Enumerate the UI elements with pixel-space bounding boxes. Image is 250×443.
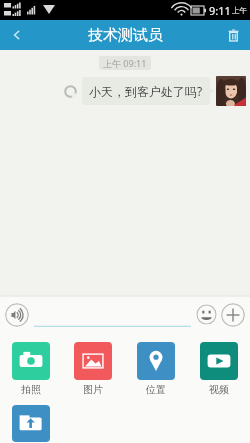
button[interactable]: Delete conversation [216, 20, 250, 50]
staticText: 小天，到客户处了吗? [89, 83, 203, 99]
button[interactable]: 文件 [0, 404, 62, 443]
staticText: 视频 [209, 383, 229, 396]
button[interactable]: More attachments [221, 303, 245, 327]
staticText: 拍照 [21, 383, 41, 396]
staticText: 位置 [146, 383, 166, 396]
button[interactable]: 拍照 [0, 341, 62, 397]
staticText: 上午 [232, 6, 247, 15]
button[interactable]: Voice message [5, 303, 29, 327]
staticText: 图片 [83, 383, 103, 396]
staticText: 9:11 [209, 3, 231, 18]
staticText: 上午 09:11 [103, 57, 147, 69]
button[interactable]: 小天，到客户处了吗? [82, 77, 215, 105]
button[interactable]: Back [0, 20, 34, 50]
staticText: 技术测试员 [88, 26, 163, 45]
button[interactable]: 视频 [187, 341, 250, 397]
button[interactable] [34, 303, 191, 327]
button[interactable]: 图片 [62, 341, 124, 397]
button[interactable]: Contact avatar [216, 76, 246, 106]
button[interactable]: Emoji [196, 304, 217, 325]
button[interactable]: 位置 [124, 341, 187, 397]
